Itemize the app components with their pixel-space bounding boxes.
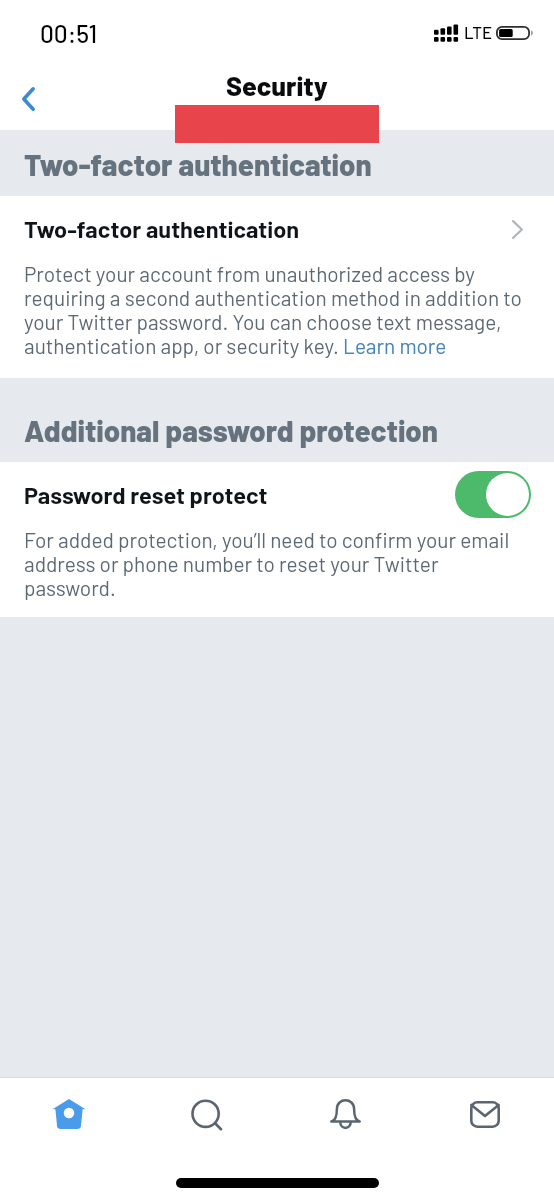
staticText: LTE xyxy=(464,23,493,42)
button[interactable]: Password reset protect toggle xyxy=(455,471,531,518)
button[interactable]: Search xyxy=(138,1078,276,1150)
staticText: Two-factor authentication xyxy=(24,216,300,242)
staticText: Security xyxy=(226,71,328,101)
button[interactable]: Two-factor authentication xyxy=(0,196,554,262)
staticText: 00:51 xyxy=(40,20,98,48)
button[interactable]: Back xyxy=(2,73,54,125)
button[interactable]: Messages xyxy=(415,1078,554,1150)
staticText: For added protection, you’ll need to con… xyxy=(24,528,526,600)
staticText: Additional password protection xyxy=(24,415,438,447)
staticText: Two-factor authentication xyxy=(24,149,372,181)
button[interactable]: Home xyxy=(0,1078,138,1150)
staticText: Password reset protect xyxy=(24,482,268,508)
button[interactable]: Notifications xyxy=(276,1078,415,1150)
staticText: Protect your account from unauthorized a… xyxy=(24,262,530,358)
